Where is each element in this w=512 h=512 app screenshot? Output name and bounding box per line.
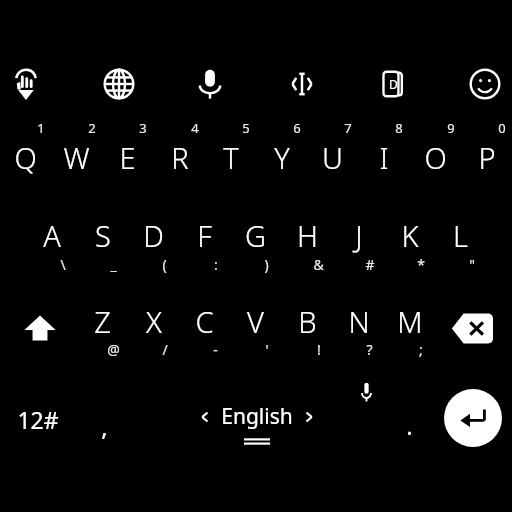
button[interactable]: Cursor control (276, 58, 328, 110)
button[interactable]: , (78, 390, 130, 448)
button[interactable]: K (384, 205, 435, 291)
staticText: / (162, 340, 168, 359)
staticText: \ (60, 255, 66, 274)
button[interactable]: 9 (410, 112, 461, 198)
button[interactable]: B (282, 293, 333, 373)
button[interactable]: N (333, 293, 384, 373)
button[interactable]: Voice input (348, 376, 384, 408)
button[interactable]: H (282, 205, 333, 291)
staticText: English (221, 402, 293, 431)
staticText: L (453, 216, 468, 255)
button[interactable]: 5 (205, 112, 256, 198)
staticText: A (43, 216, 61, 255)
button[interactable]: X (128, 293, 179, 373)
staticText: 12# (17, 404, 59, 435)
staticText: * (417, 255, 425, 274)
button[interactable]: 0 (461, 112, 512, 198)
button[interactable]: A (26, 205, 77, 291)
button[interactable]: Gesture typing (1, 58, 53, 110)
button[interactable]: 6 (256, 112, 307, 198)
staticText: D (389, 76, 398, 92)
button[interactable]: English (132, 386, 382, 448)
staticText: 1 (37, 119, 45, 137)
staticText: K (401, 216, 419, 255)
staticText: E (119, 138, 136, 177)
staticText: C (195, 302, 214, 341)
staticText: ! (317, 340, 321, 359)
staticText: ; (419, 340, 423, 359)
button[interactable]: S (77, 205, 128, 291)
staticText: - (213, 340, 218, 359)
staticText: B (298, 302, 317, 341)
staticText: R (171, 138, 189, 177)
button[interactable]: M (384, 293, 435, 373)
staticText: M (397, 302, 423, 341)
staticText: & (313, 255, 324, 274)
button[interactable]: Stickers (367, 58, 419, 110)
staticText: . (406, 409, 413, 442)
button[interactable]: Backspace (440, 296, 504, 360)
button[interactable]: 12# (2, 390, 74, 448)
staticText: ( (162, 255, 167, 274)
staticText: : (214, 255, 218, 274)
staticText: _ (110, 255, 117, 274)
button[interactable]: 4 (154, 112, 205, 198)
button[interactable]: Enter (444, 389, 502, 447)
staticText: " (469, 255, 475, 274)
button[interactable]: D (128, 205, 179, 291)
button[interactable]: J (333, 205, 384, 291)
staticText: U (322, 138, 343, 177)
staticText: 0 (498, 119, 506, 137)
staticText: Q (14, 138, 37, 177)
button[interactable]: Emoji (459, 58, 511, 110)
button[interactable]: . (386, 390, 432, 448)
staticText: V (247, 302, 264, 341)
staticText: S (95, 216, 111, 255)
staticText: I (379, 138, 389, 177)
staticText: X (146, 302, 162, 341)
staticText: 5 (242, 119, 250, 137)
button[interactable]: 2 (51, 112, 102, 198)
button[interactable]: 7 (307, 112, 358, 198)
staticText: N (348, 302, 370, 341)
staticText: 7 (344, 119, 352, 137)
staticText: 2 (88, 119, 96, 137)
staticText: G (245, 216, 266, 255)
staticText: O (424, 138, 447, 177)
staticText: ' (265, 340, 269, 359)
staticText: @ (107, 340, 120, 359)
button[interactable]: Voice input (184, 58, 236, 110)
button[interactable]: G (230, 205, 281, 291)
staticText: 8 (395, 119, 403, 137)
staticText: W (63, 138, 90, 177)
staticText: , (101, 410, 108, 443)
staticText: F (197, 216, 212, 255)
staticText: 9 (447, 119, 455, 137)
staticText: 6 (293, 119, 301, 137)
staticText: 3 (139, 119, 147, 137)
staticText: J (355, 216, 363, 255)
staticText: Z (94, 302, 111, 341)
staticText: Y (274, 138, 290, 177)
button[interactable]: C (179, 293, 230, 373)
staticText: 4 (191, 119, 199, 137)
staticText: ? (366, 340, 373, 359)
button[interactable]: 1 (0, 112, 51, 198)
button[interactable]: 3 (102, 112, 153, 198)
staticText: # (365, 255, 375, 274)
staticText: T (223, 138, 239, 177)
staticText: H (297, 216, 318, 255)
staticText: ) (264, 255, 269, 274)
button[interactable]: Shift (8, 296, 72, 360)
button[interactable]: V (230, 293, 281, 373)
button[interactable]: L (435, 205, 486, 291)
staticText: P (478, 138, 496, 177)
button[interactable]: Z (77, 293, 128, 373)
button[interactable]: Change language (93, 58, 145, 110)
button[interactable]: F (179, 205, 230, 291)
button[interactable]: 8 (358, 112, 409, 198)
staticText: D (143, 216, 164, 255)
